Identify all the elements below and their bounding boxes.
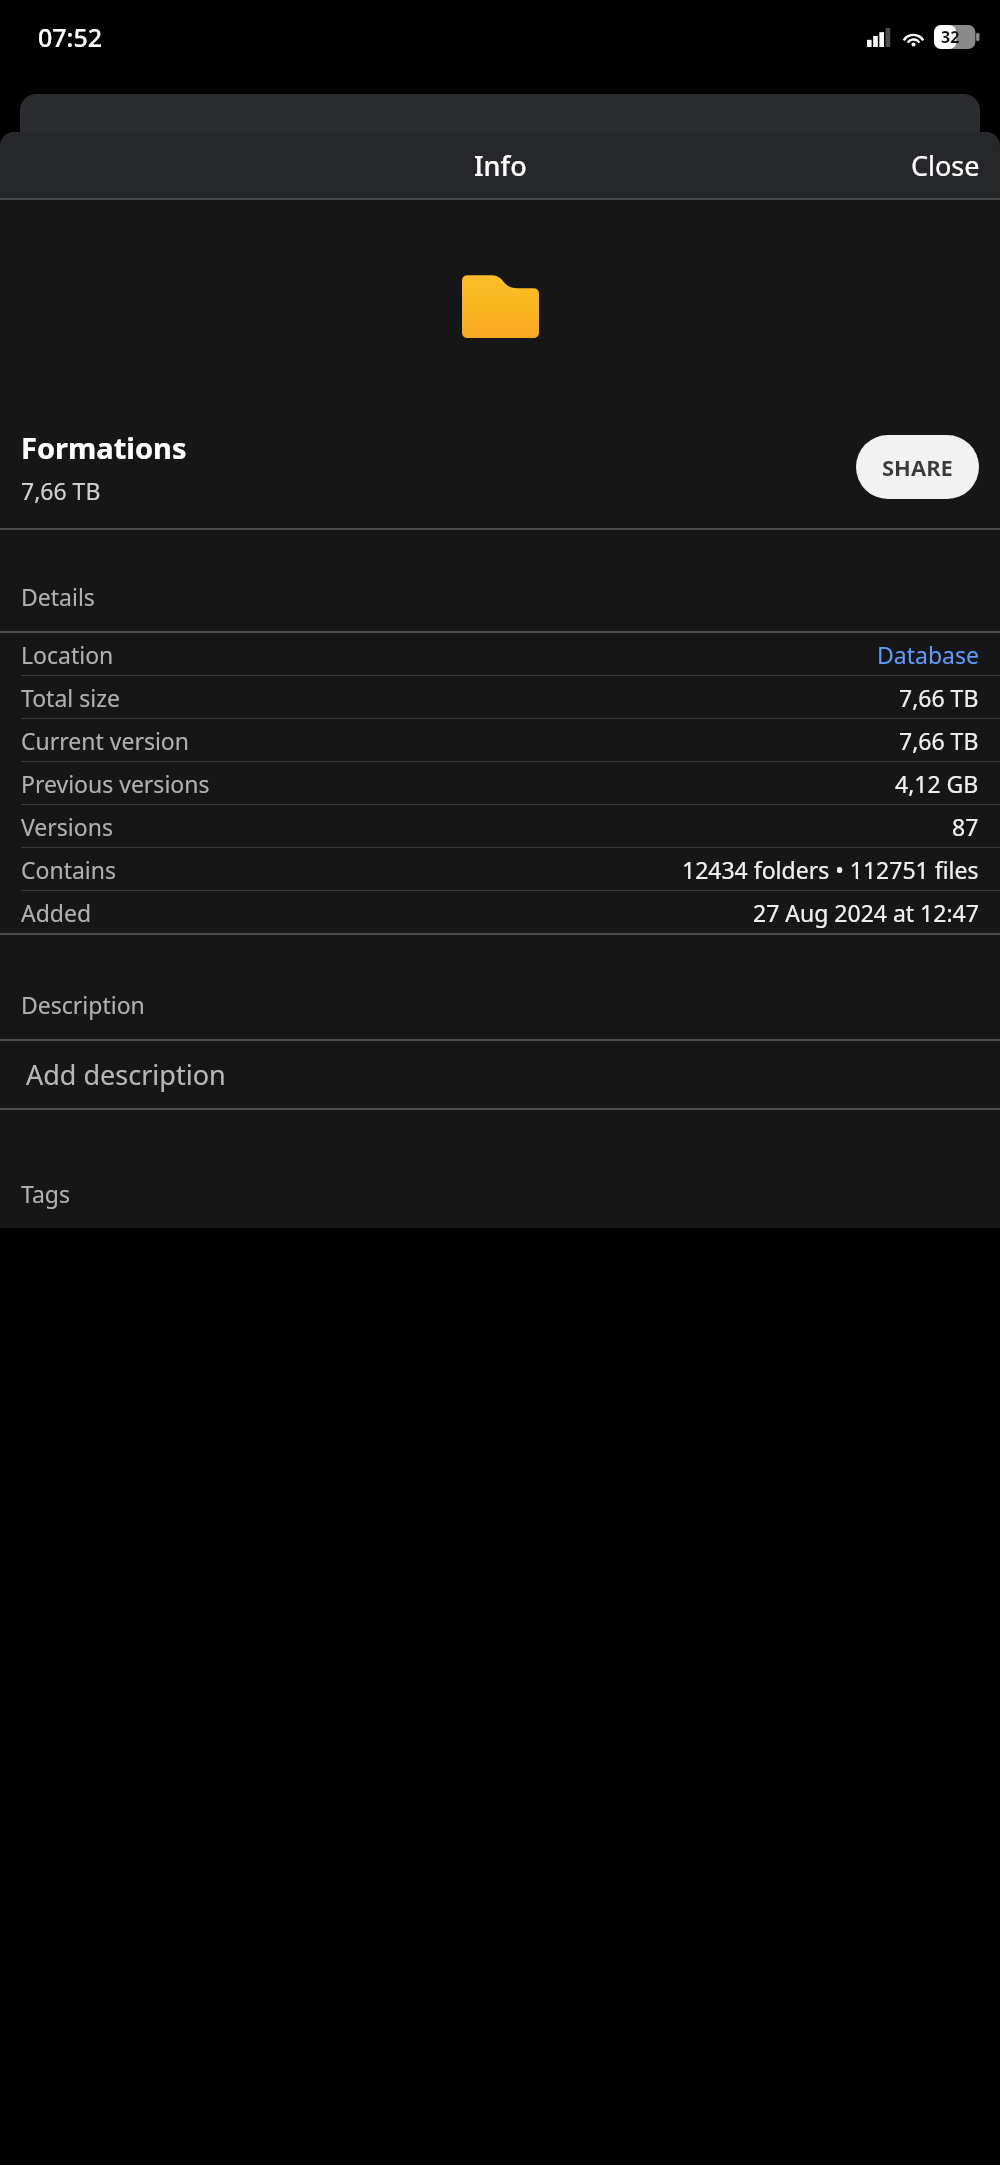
- button[interactable]: SHARE: [856, 435, 979, 499]
- staticText: Total size: [21, 682, 120, 713]
- staticText: Info: [474, 147, 527, 184]
- staticText: Added: [21, 897, 92, 928]
- button[interactable]: Total size: [0, 676, 1000, 718]
- button[interactable]: Location: [0, 633, 1000, 675]
- button[interactable]: Add description: [0, 1041, 1000, 1108]
- staticText: Contains: [21, 854, 117, 885]
- staticText: 7,66 TB: [899, 725, 979, 756]
- staticText: Add description: [26, 1056, 226, 1093]
- staticText: Close: [911, 147, 980, 184]
- staticText: Details: [21, 581, 95, 612]
- staticText: Location: [21, 639, 114, 670]
- button[interactable]: Current version: [0, 719, 1000, 761]
- staticText: 4,12 GB: [895, 768, 979, 799]
- staticText: Description: [21, 989, 145, 1020]
- staticText: 07:52: [38, 20, 103, 54]
- staticText: 7,66 TB: [899, 682, 979, 713]
- staticText: 87: [952, 811, 979, 842]
- staticText: Database: [877, 639, 979, 670]
- staticText: Formations: [21, 428, 187, 467]
- staticText: 7,66 TB: [21, 475, 101, 506]
- button[interactable]: Added: [0, 891, 1000, 933]
- staticText: 12434 folders • 112751 files: [682, 854, 979, 885]
- button[interactable]: Versions: [0, 805, 1000, 847]
- staticText: Versions: [21, 811, 113, 842]
- button[interactable]: Close: [891, 139, 1000, 192]
- staticText: Previous versions: [21, 768, 210, 799]
- staticText: 27 Aug 2024 at 12:47: [753, 897, 979, 928]
- staticText: SHARE: [882, 452, 953, 482]
- staticText: Tags: [21, 1178, 71, 1209]
- button[interactable]: Previous versions: [0, 762, 1000, 804]
- staticText: 32: [941, 26, 960, 48]
- staticText: Current version: [21, 725, 189, 756]
- button[interactable]: Contains: [0, 848, 1000, 890]
